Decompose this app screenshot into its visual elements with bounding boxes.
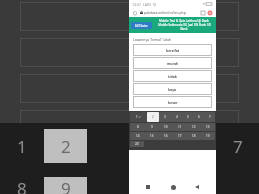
staticText: Mobile Indonesia SD Jual UN Bank SD [158, 23, 211, 27]
staticText: 1 [17, 135, 27, 158]
button[interactable]: Home [168, 182, 178, 192]
staticText: pakdasa.online/m/tes.php [144, 10, 200, 15]
staticText: Mobile Test & Quiz Latihan Uji Bank [159, 19, 209, 23]
staticText: 9 [151, 125, 153, 129]
button[interactable]: tidak [133, 70, 212, 82]
staticText: 8 [17, 177, 27, 194]
button[interactable]: Record [207, 10, 213, 16]
staticText: bersifat [166, 48, 180, 53]
button[interactable]: 5 [182, 112, 193, 122]
staticText: 15 [150, 134, 154, 138]
button[interactable]: 3 [159, 112, 171, 122]
staticText: 16 [164, 134, 168, 138]
staticText: murah [167, 61, 179, 66]
button[interactable]: 1 ✓ [130, 112, 147, 122]
staticText: 12 [192, 125, 196, 129]
staticText: tidak [168, 74, 177, 79]
staticText: 2 [152, 115, 154, 119]
button[interactable]: murah [133, 57, 212, 69]
button[interactable]: Back [192, 182, 202, 192]
staticText: 1 ✓ [136, 115, 142, 119]
button[interactable]: AD Choice [131, 22, 152, 29]
button[interactable]: 7 [204, 112, 215, 122]
button[interactable]: Recents [143, 182, 153, 192]
button[interactable]: 8 [130, 123, 145, 131]
staticText: 7 [233, 135, 243, 158]
button[interactable]: 10 [159, 123, 173, 131]
staticText: 19 [206, 134, 210, 138]
button[interactable]: 20 [130, 141, 144, 147]
staticText: 11 [178, 125, 182, 129]
staticText: 6 [190, 135, 200, 158]
staticText: 4 [176, 115, 178, 119]
staticText: 14:41 [132, 2, 141, 7]
button[interactable]: Tabs [200, 10, 206, 16]
button[interactable]: bersifat [133, 44, 212, 56]
staticText: 13 [206, 125, 210, 129]
staticText: 2 [61, 135, 71, 158]
button[interactable]: 14 [130, 132, 145, 140]
staticText: 8 [137, 125, 139, 129]
button[interactable]: 12 [187, 123, 201, 131]
button[interactable]: Home [132, 10, 138, 16]
staticText: 17 [178, 134, 182, 138]
button[interactable]: 18 [187, 132, 201, 140]
staticText: 3 [164, 115, 166, 119]
staticText: Lawannya "kemal" ialah [133, 37, 171, 42]
staticText: besar [168, 100, 178, 105]
button[interactable]: 9 [145, 123, 159, 131]
staticText: 10 [164, 125, 168, 129]
button[interactable]: 19 [201, 132, 215, 140]
button[interactable]: kaya [133, 83, 212, 95]
staticText: AD Choice [135, 24, 148, 28]
button[interactable]: 11 [173, 123, 187, 131]
button[interactable]: 15 [145, 132, 159, 140]
button[interactable]: 17 [173, 132, 187, 140]
button[interactable]: 13 [201, 123, 215, 131]
button[interactable]: 4 [171, 112, 182, 122]
staticText: 13 [185, 177, 205, 194]
staticText: 7 [209, 115, 211, 119]
button[interactable]: 6 [193, 112, 204, 122]
staticText: 9 [61, 177, 71, 194]
button[interactable]: 2 [147, 112, 159, 122]
button[interactable]: 16 [159, 132, 173, 140]
staticText: 14 [136, 134, 140, 138]
staticText: 6 [198, 115, 200, 119]
staticText: 5 [187, 115, 189, 119]
staticText: LAKS [143, 2, 152, 7]
staticText: kaya [168, 87, 177, 92]
button[interactable]: besar [133, 96, 212, 108]
staticText: ▾ [203, 2, 205, 6]
staticText: 20 [135, 142, 139, 146]
staticText: 18 [192, 134, 196, 138]
staticText: Bank [180, 27, 188, 31]
